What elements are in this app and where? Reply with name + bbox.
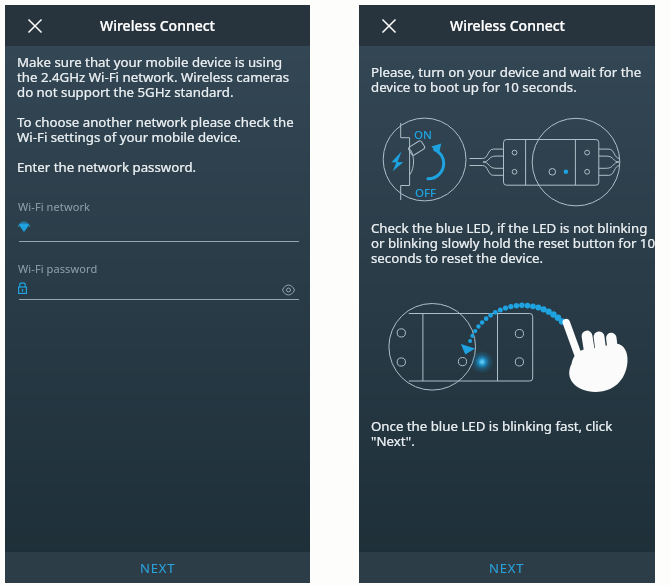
button[interactable]: NEXT bbox=[359, 552, 655, 583]
staticText: Once the blue LED is blinking fast, clic… bbox=[371, 417, 613, 450]
staticText: Please, turn on your device and wait for… bbox=[371, 63, 642, 96]
staticText: Wi-Fi password bbox=[18, 261, 98, 276]
staticText: Check the blue LED, if the LED is not bl… bbox=[371, 219, 655, 267]
staticText: Wireless Connect bbox=[100, 16, 215, 35]
staticText: NEXT bbox=[489, 559, 525, 577]
button[interactable]: NEXT bbox=[5, 552, 310, 583]
staticText: Wi-Fi network bbox=[18, 199, 91, 214]
staticText: Make sure that your mobile device is usi… bbox=[17, 53, 294, 176]
button[interactable]: Close bbox=[372, 9, 405, 42]
button[interactable]: Show password bbox=[279, 280, 298, 299]
staticText: ON bbox=[414, 127, 432, 143]
staticText: Wireless Connect bbox=[450, 16, 565, 35]
button[interactable]: Close bbox=[18, 9, 51, 42]
staticText: NEXT bbox=[140, 559, 176, 577]
staticText: OFF bbox=[415, 185, 437, 201]
